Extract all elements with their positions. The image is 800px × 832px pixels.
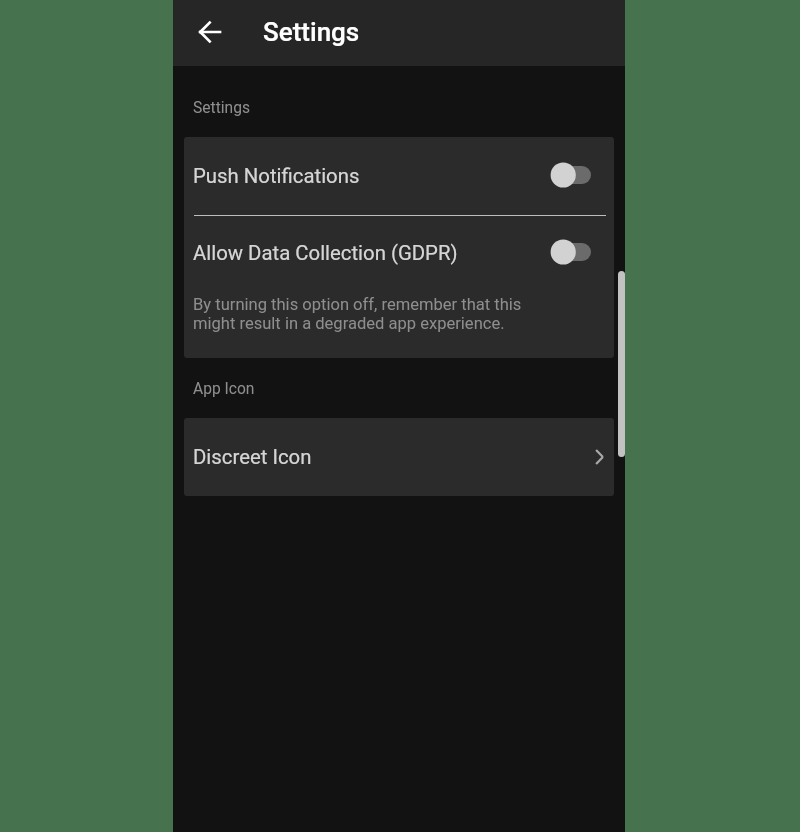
button[interactable]: Allow Data Collection (GDPR), off — [551, 239, 591, 265]
button[interactable]: Push Notifications, off — [551, 162, 591, 188]
button[interactable]: Push Notifications — [184, 150, 614, 200]
button[interactable]: Navigate up — [187, 9, 233, 55]
staticText: Discreet Icon — [193, 445, 312, 469]
staticText: Push Notifications — [193, 164, 360, 188]
button[interactable]: Allow Data Collection (GDPR) — [184, 227, 614, 277]
staticText: Settings — [263, 17, 360, 47]
button[interactable]: Discreet Icon — [184, 418, 614, 496]
staticText: Settings — [193, 99, 250, 117]
staticText: App Icon — [193, 380, 255, 398]
staticText: By turning this option off, remember tha… — [193, 295, 614, 333]
staticText: Allow Data Collection (GDPR) — [193, 241, 458, 265]
